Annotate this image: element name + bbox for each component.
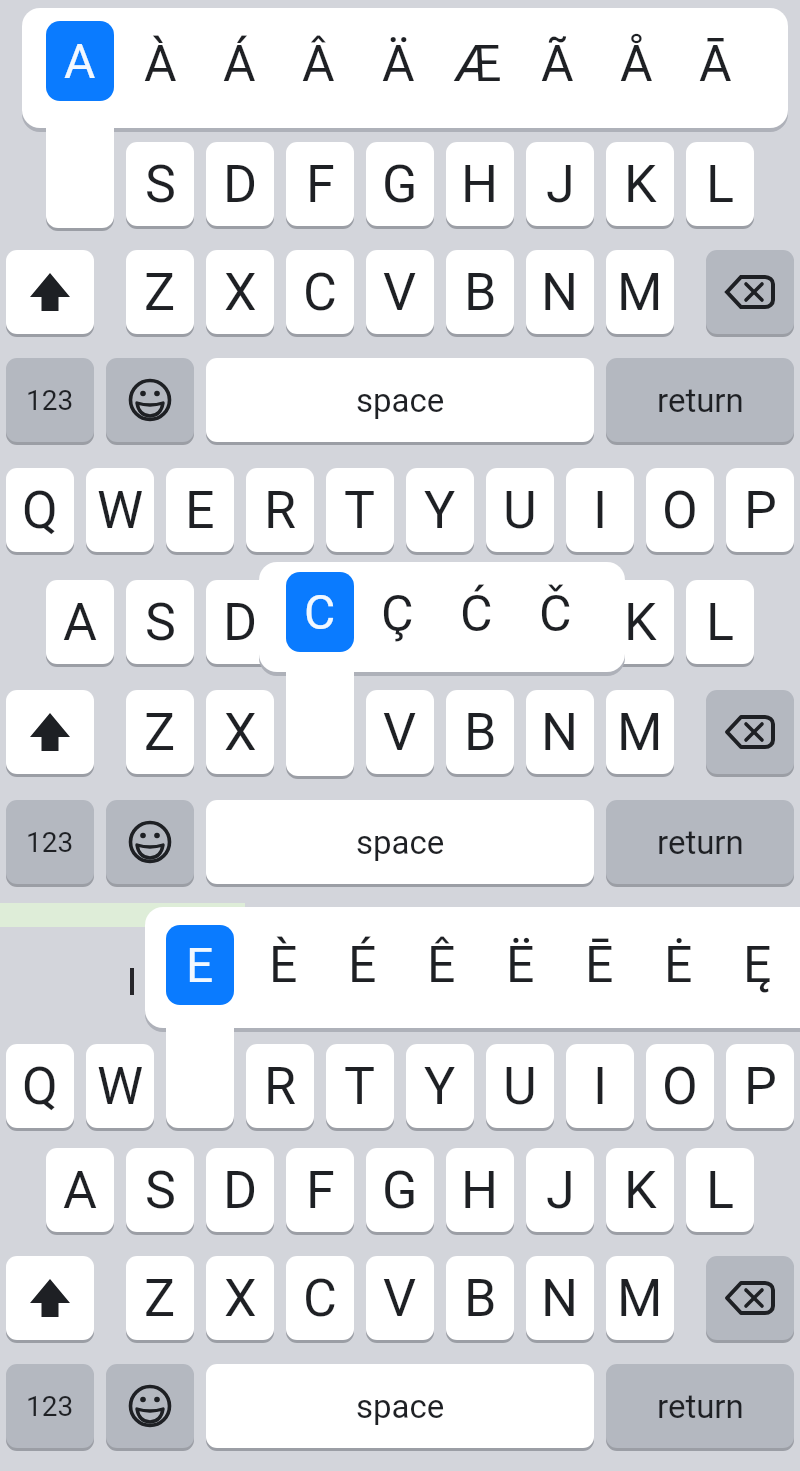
button[interactable]: Y (406, 468, 474, 552)
button[interactable]: space (206, 1364, 594, 1448)
button[interactable]: Q (6, 468, 74, 552)
button[interactable]: N (526, 250, 594, 334)
button[interactable]: Y (406, 1044, 474, 1128)
button[interactable]: K (606, 1148, 674, 1232)
button[interactable]: A (46, 21, 114, 101)
button[interactable] (706, 1256, 794, 1340)
button[interactable]: space (206, 358, 594, 442)
button[interactable]: Č (515, 564, 595, 664)
button[interactable]: Ç (357, 564, 437, 664)
button[interactable]: X (206, 690, 274, 774)
button[interactable]: 123 (6, 1364, 94, 1448)
button[interactable]: Â (278, 14, 358, 114)
button[interactable]: L (686, 1148, 754, 1232)
button[interactable]: L (686, 580, 754, 664)
button[interactable] (706, 690, 794, 774)
button[interactable]: Z (126, 250, 194, 334)
button[interactable]: M (606, 690, 674, 774)
button[interactable]: Ė (638, 915, 718, 1015)
button[interactable]: J (526, 1148, 594, 1232)
button[interactable]: S (126, 580, 194, 664)
button[interactable]: H (446, 142, 514, 226)
button[interactable]: T (326, 1044, 394, 1128)
button[interactable]: J (526, 142, 594, 226)
button[interactable] (106, 358, 194, 442)
button[interactable]: B (446, 1256, 514, 1340)
button[interactable]: J (526, 580, 594, 664)
button[interactable]: Ę (717, 915, 797, 1015)
button[interactable]: A (46, 1148, 114, 1232)
button[interactable]: E (166, 925, 234, 1005)
button[interactable]: Ë (480, 915, 560, 1015)
button[interactable]: X (206, 250, 274, 334)
button[interactable]: P (726, 1044, 794, 1128)
button[interactable]: B (446, 690, 514, 774)
button[interactable]: R (246, 1044, 314, 1128)
button[interactable]: I (566, 1044, 634, 1128)
button[interactable]: N (526, 1256, 594, 1340)
button[interactable]: return (606, 800, 794, 884)
button[interactable]: S (126, 1148, 194, 1232)
button[interactable]: V (366, 250, 434, 334)
button[interactable]: Ē (559, 915, 639, 1015)
button[interactable]: G (366, 580, 434, 664)
button[interactable]: I (566, 468, 634, 552)
button[interactable]: return (606, 358, 794, 442)
button[interactable] (706, 250, 794, 334)
button[interactable]: D (206, 142, 274, 226)
button[interactable]: K (606, 142, 674, 226)
button[interactable]: C (286, 1256, 354, 1340)
button[interactable]: G (366, 1148, 434, 1232)
button[interactable]: C (286, 572, 354, 652)
button[interactable]: H (446, 1148, 514, 1232)
button[interactable]: M (606, 250, 674, 334)
button[interactable]: V (366, 1256, 434, 1340)
button[interactable]: B (446, 250, 514, 334)
button[interactable]: C (286, 250, 354, 334)
button[interactable]: À (120, 14, 200, 114)
button[interactable]: P (726, 468, 794, 552)
button[interactable]: W (86, 468, 154, 552)
button[interactable]: E (166, 468, 234, 552)
button[interactable]: U (486, 1044, 554, 1128)
button[interactable] (6, 690, 94, 774)
button[interactable]: D (206, 1148, 274, 1232)
button[interactable]: Ê (401, 915, 481, 1015)
button[interactable]: R (246, 468, 314, 552)
button[interactable]: È (243, 915, 323, 1015)
button[interactable]: O (646, 468, 714, 552)
button[interactable]: O (646, 1044, 714, 1128)
button[interactable]: return (606, 1364, 794, 1448)
button[interactable]: F (286, 580, 354, 664)
button[interactable]: Ä (358, 14, 438, 114)
button[interactable]: M (606, 1256, 674, 1340)
button[interactable]: S (126, 142, 194, 226)
button[interactable]: X (206, 1256, 274, 1340)
button[interactable]: Á (199, 14, 279, 114)
button[interactable] (6, 1256, 94, 1340)
button[interactable]: 123 (6, 800, 94, 884)
button[interactable]: Z (126, 690, 194, 774)
button[interactable]: Ć (436, 564, 516, 664)
button[interactable]: H (446, 580, 514, 664)
button[interactable]: F (286, 1148, 354, 1232)
button[interactable]: É (322, 915, 402, 1015)
button[interactable] (6, 250, 94, 334)
button[interactable]: U (486, 468, 554, 552)
button[interactable]: F (286, 142, 354, 226)
button[interactable]: space (206, 800, 594, 884)
button[interactable]: Æ (437, 14, 517, 114)
button[interactable]: Ā (675, 14, 755, 114)
button[interactable]: 123 (6, 358, 94, 442)
button[interactable]: L (686, 142, 754, 226)
button[interactable]: N (526, 690, 594, 774)
button[interactable]: G (366, 142, 434, 226)
button[interactable]: A (46, 580, 114, 664)
button[interactable]: Q (6, 1044, 74, 1128)
button[interactable]: V (366, 690, 434, 774)
button[interactable]: Å (596, 14, 676, 114)
button[interactable] (106, 800, 194, 884)
button[interactable]: K (606, 580, 674, 664)
button[interactable]: D (206, 580, 274, 664)
button[interactable]: T (326, 468, 394, 552)
